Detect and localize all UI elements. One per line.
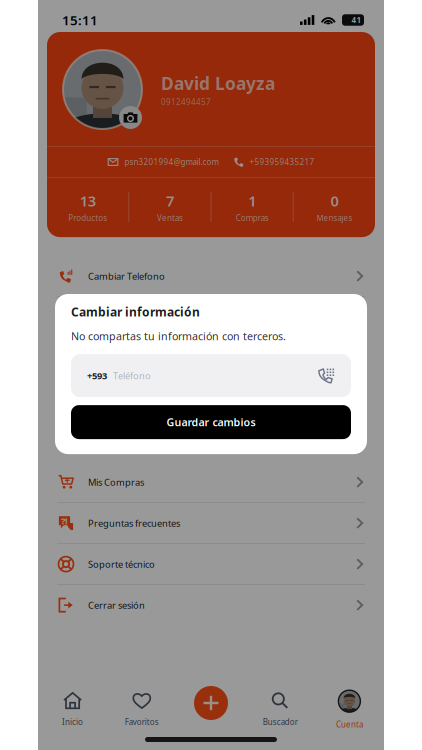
staticText: Soporte técnico: [88, 558, 155, 570]
staticText: Cerrar sesión: [88, 599, 145, 611]
staticText: 0: [330, 191, 338, 210]
staticText: +593959435217: [249, 157, 314, 167]
staticText: psn3201994@gmail.com: [124, 157, 218, 167]
button[interactable]: Inicio: [38, 688, 107, 732]
staticText: Cambiar información: [71, 304, 200, 320]
button[interactable]: Mis Compras: [38, 462, 384, 502]
staticText: 41: [351, 15, 361, 25]
staticText: No compartas tu información con terceros…: [71, 329, 286, 343]
staticText: +593: [87, 369, 107, 382]
button[interactable]: Cuenta: [315, 688, 384, 732]
staticText: 15:11: [62, 11, 98, 29]
staticText: 1: [248, 191, 256, 210]
staticText: Favoritos: [125, 717, 159, 727]
staticText: 7: [166, 191, 174, 210]
staticText: 0912494457: [161, 97, 211, 107]
staticText: Buscador: [263, 717, 298, 727]
button[interactable]: Cambiar Telefono: [38, 256, 384, 296]
button[interactable]: Guardar cambios: [71, 405, 351, 439]
staticText: Mensajes: [316, 212, 352, 223]
staticText: Ventas: [157, 212, 183, 223]
staticText: Cuenta: [336, 719, 363, 730]
staticText: Compras: [236, 212, 269, 223]
staticText: Guardar cambios: [166, 415, 255, 429]
staticText: Mis Compras: [88, 476, 144, 488]
staticText: ?!: [61, 515, 68, 527]
staticText: Productos: [68, 212, 107, 223]
button[interactable]: Soporte técnico: [38, 544, 384, 584]
staticText: David Loayza: [161, 72, 275, 95]
staticText: Teléfono: [113, 369, 151, 382]
button[interactable]: Cerrar sesión: [38, 585, 384, 625]
staticText: 13: [80, 191, 96, 210]
button[interactable]: Agregar: [176, 688, 246, 732]
staticText: Inicio: [62, 717, 83, 727]
button[interactable]: Favoritos: [107, 688, 176, 732]
button[interactable]: Cambiar foto: [119, 106, 142, 129]
staticText: Cambiar Telefono: [88, 270, 165, 282]
button[interactable]: ?!: [38, 503, 384, 543]
button[interactable]: Buscador: [246, 688, 315, 732]
staticText: Preguntas frecuentes: [88, 517, 180, 529]
